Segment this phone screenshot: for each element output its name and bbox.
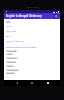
button[interactable]: Related words and phrases <box>6 45 58 48</box>
staticText: catch <box>7 53 13 55</box>
staticText: catastrophe <box>7 69 19 71</box>
button[interactable]: বিড়াল, মার্জার <box>6 29 58 32</box>
button[interactable]: category <box>6 72 58 74</box>
staticText: cathedral <box>7 61 16 63</box>
button[interactable]: English to Bengali Dictionary <box>6 14 54 18</box>
staticText: চাবুক মারা, বেত্রাঘাত করা <box>6 39 25 42</box>
button[interactable]: catch <box>6 53 58 55</box>
button[interactable]: Search <box>54 14 59 19</box>
staticText: verb <box>6 35 11 38</box>
button[interactable]: verb <box>6 35 58 38</box>
button[interactable]: noun <box>6 25 58 28</box>
button[interactable]: cattle <box>6 65 58 67</box>
staticText: catalogue <box>7 50 17 52</box>
button[interactable]: cathedral <box>6 61 58 63</box>
button[interactable]: caterpillar <box>6 57 58 59</box>
button[interactable]: Recent apps <box>45 80 51 86</box>
staticText: Related words and phrases <box>6 45 37 48</box>
staticText: English to Bengali Dictionary <box>6 14 42 18</box>
staticText: cattle <box>7 65 13 67</box>
button[interactable]: Home <box>29 80 35 86</box>
staticText: noun <box>6 25 12 28</box>
button[interactable]: catalogue <box>6 50 58 52</box>
staticText: cat <box>6 20 10 24</box>
button[interactable]: Back <box>14 80 20 86</box>
staticText: caterpillar <box>7 57 17 59</box>
button[interactable]: catastrophe <box>6 69 58 71</box>
button[interactable]: চাবুক মারা, বেত্রাঘাত করা <box>6 39 58 42</box>
button[interactable]: cat <box>6 20 58 24</box>
staticText: বিড়াল, মার্জার <box>6 29 17 32</box>
staticText: category <box>6 72 15 74</box>
